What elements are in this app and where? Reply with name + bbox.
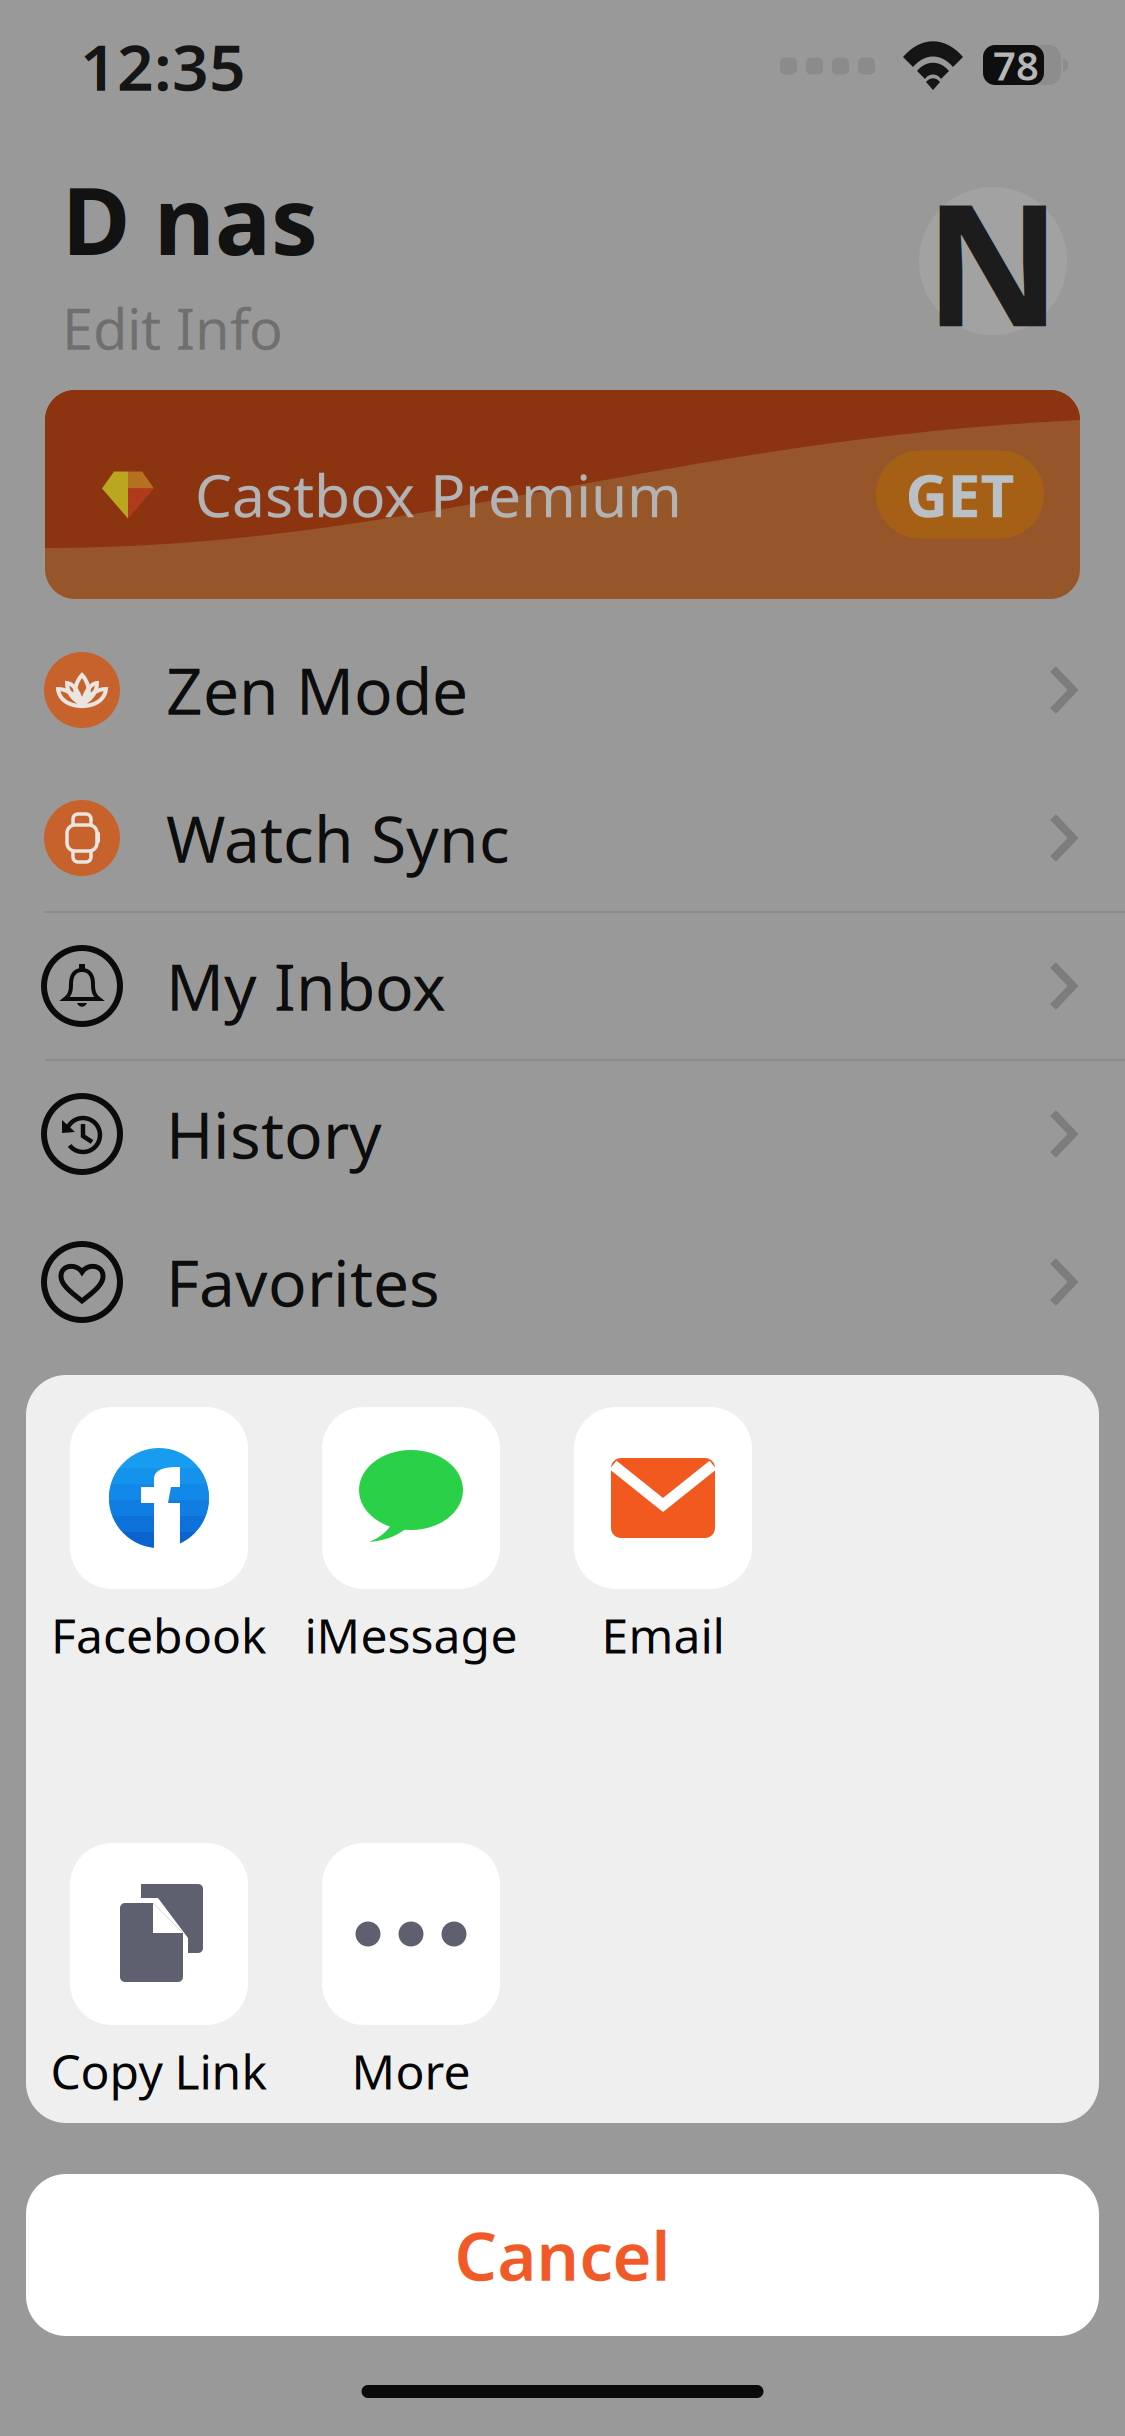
button[interactable]: More <box>322 1843 574 2133</box>
staticText: Zen Mode <box>166 647 468 732</box>
staticText: GET <box>905 455 1014 533</box>
button[interactable]: Favorites <box>0 1207 1125 1355</box>
staticText: My Inbox <box>166 943 446 1028</box>
button[interactable]: iMessage <box>322 1407 574 1697</box>
staticText: Watch Sync <box>166 795 510 880</box>
staticText: History <box>166 1091 382 1176</box>
button[interactable]: Cancel <box>26 2174 1099 2336</box>
staticText: 12:35 <box>80 23 246 108</box>
button[interactable]: Watch Sync <box>0 763 1125 911</box>
staticText: Copy Link <box>50 2039 267 2103</box>
staticText: Email <box>601 1603 724 1667</box>
staticText: Cancel <box>454 2211 670 2299</box>
staticText: More <box>351 2039 470 2103</box>
button[interactable]: Facebook <box>70 1407 322 1697</box>
button[interactable]: Castbox Premium <box>45 390 1080 599</box>
staticText: Castbox Premium <box>195 455 682 533</box>
staticText: iMessage <box>304 1603 517 1667</box>
staticText: D nas <box>62 157 318 281</box>
staticText: Facebook <box>51 1603 267 1667</box>
button[interactable]: Copy Link <box>70 1843 322 2133</box>
button[interactable]: Email <box>574 1407 826 1697</box>
button[interactable]: My Inbox <box>0 911 1125 1059</box>
button[interactable]: Zen Mode <box>0 615 1125 763</box>
staticText: Edit Info <box>62 291 283 365</box>
button[interactable]: History <box>0 1059 1125 1207</box>
staticText: Favorites <box>166 1239 440 1324</box>
staticText: N <box>924 149 1061 373</box>
button[interactable]: Profile photo <box>919 187 1067 335</box>
staticText: 78 <box>993 38 1039 91</box>
